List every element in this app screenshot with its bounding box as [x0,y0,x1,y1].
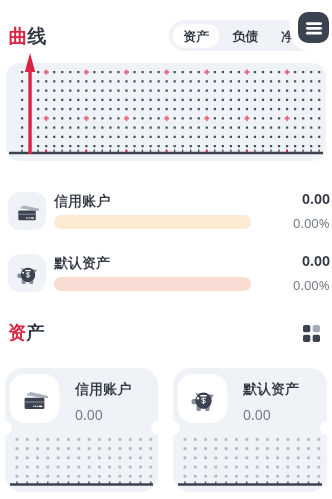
button[interactable]: 信用账户 [5,368,158,492]
staticText: 0.00 [302,251,330,270]
staticText: 曲 [8,25,27,49]
button[interactable]: Menu [298,12,329,43]
staticText: 负债 [232,28,258,44]
staticText: 默认资产 [54,255,110,273]
staticText: 线 [27,25,46,49]
staticText: 净资产 [281,28,303,44]
staticText: 0.00% [293,276,330,294]
staticText: 信用账户 [75,381,131,399]
button[interactable]: 资产 [173,24,219,48]
button[interactable]: 负债 [222,24,268,48]
staticText: 0.00% [293,214,330,232]
staticText: 信用账户 [54,193,110,211]
button[interactable]: Grid view [298,320,324,346]
button[interactable]: 默认资产 [173,368,327,492]
staticText: 0.00 [75,405,103,424]
button[interactable]: 默认资产 [0,251,332,294]
staticText: 资 [8,322,26,345]
staticText: 0.00 [243,405,271,424]
staticText: 0.00 [302,189,330,208]
staticText: 资产 [183,28,209,44]
staticText: 产 [26,322,44,345]
button[interactable]: 信用账户 [0,189,332,232]
button[interactable]: 净资产 [271,24,313,48]
staticText: 默认资产 [243,381,299,399]
